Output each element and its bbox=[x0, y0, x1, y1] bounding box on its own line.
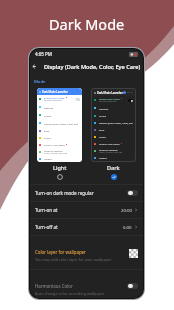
staticText: Set dark mode here bbox=[44, 99, 62, 102]
staticText: Public bbox=[44, 136, 51, 139]
button[interactable]: Harmonious Color bbox=[30, 270, 143, 298]
button[interactable]: Dark Mode Launcher bbox=[37, 88, 82, 180]
staticText: Enable Dark Mode bbox=[99, 97, 120, 100]
staticText: Dark bbox=[107, 164, 120, 171]
staticText: Mode bbox=[34, 79, 46, 85]
staticText: Access, location, app, sign bbox=[44, 152, 68, 155]
staticText: Back bbox=[99, 128, 105, 131]
staticText: Color layer for wallpaper bbox=[35, 249, 86, 255]
staticText: 4:05 PM bbox=[35, 51, 52, 57]
button[interactable]: Turn-on dark mode regular bbox=[30, 185, 143, 201]
staticText: Dark Mode bbox=[49, 14, 125, 34]
staticText: Public bbox=[99, 135, 106, 138]
staticText: Desktop bbox=[99, 107, 109, 110]
staticText: Display (Dark Mode, Color, Eye Care) bbox=[99, 121, 133, 124]
button[interactable]: Turn-on at bbox=[30, 202, 143, 218]
staticText: Guides bbox=[44, 157, 52, 160]
staticText: Phone bbox=[44, 114, 52, 117]
staticText: Back bbox=[44, 129, 50, 132]
staticText: Access, location, app, sign bbox=[99, 151, 123, 154]
staticText: Guides bbox=[99, 156, 107, 159]
staticText: settings bbox=[127, 91, 133, 94]
staticText: Turn-on dark mode regular bbox=[35, 190, 94, 196]
staticText: Auto change color according wallpaper bbox=[35, 291, 105, 296]
staticText: Photos And Media bbox=[44, 143, 65, 146]
button[interactable]: Color layer for wallpaper bbox=[30, 236, 143, 269]
staticText: Security Settings bbox=[44, 149, 63, 152]
button[interactable]: Turn-off at bbox=[30, 219, 143, 235]
staticText: Set dark mode here bbox=[99, 100, 117, 103]
staticText: Dark Mode Launcher bbox=[42, 90, 68, 94]
staticText: Display (Dark Mode, Color, Eye Care) bbox=[44, 63, 141, 71]
staticText: Security Settings bbox=[99, 148, 118, 151]
staticText: Enable Dark Mode bbox=[44, 96, 65, 99]
staticText: Photos And Media bbox=[99, 142, 120, 145]
button[interactable]: Dark Mode Launcher bbox=[91, 88, 136, 180]
staticText: Turn-off at bbox=[35, 224, 58, 230]
button[interactable]: Toggle bbox=[127, 190, 138, 196]
staticText: 6:00 bbox=[123, 224, 132, 230]
staticText: You may add color layer for your wallpap… bbox=[35, 257, 112, 262]
staticText: Harmonious Color bbox=[35, 283, 73, 289]
staticText: Display (Dark Mode, Color, Eye Care) bbox=[44, 122, 80, 125]
staticText: 20:00 bbox=[121, 207, 132, 213]
button[interactable]: Toggle bbox=[127, 283, 138, 289]
staticText: Phone bbox=[99, 114, 107, 117]
button[interactable]: Back bbox=[30, 59, 39, 74]
staticText: Desktop bbox=[44, 106, 54, 109]
staticText: Light bbox=[53, 164, 67, 171]
staticText: Dark Mode Launcher bbox=[97, 91, 123, 95]
staticText: Turn-on at bbox=[35, 207, 58, 213]
